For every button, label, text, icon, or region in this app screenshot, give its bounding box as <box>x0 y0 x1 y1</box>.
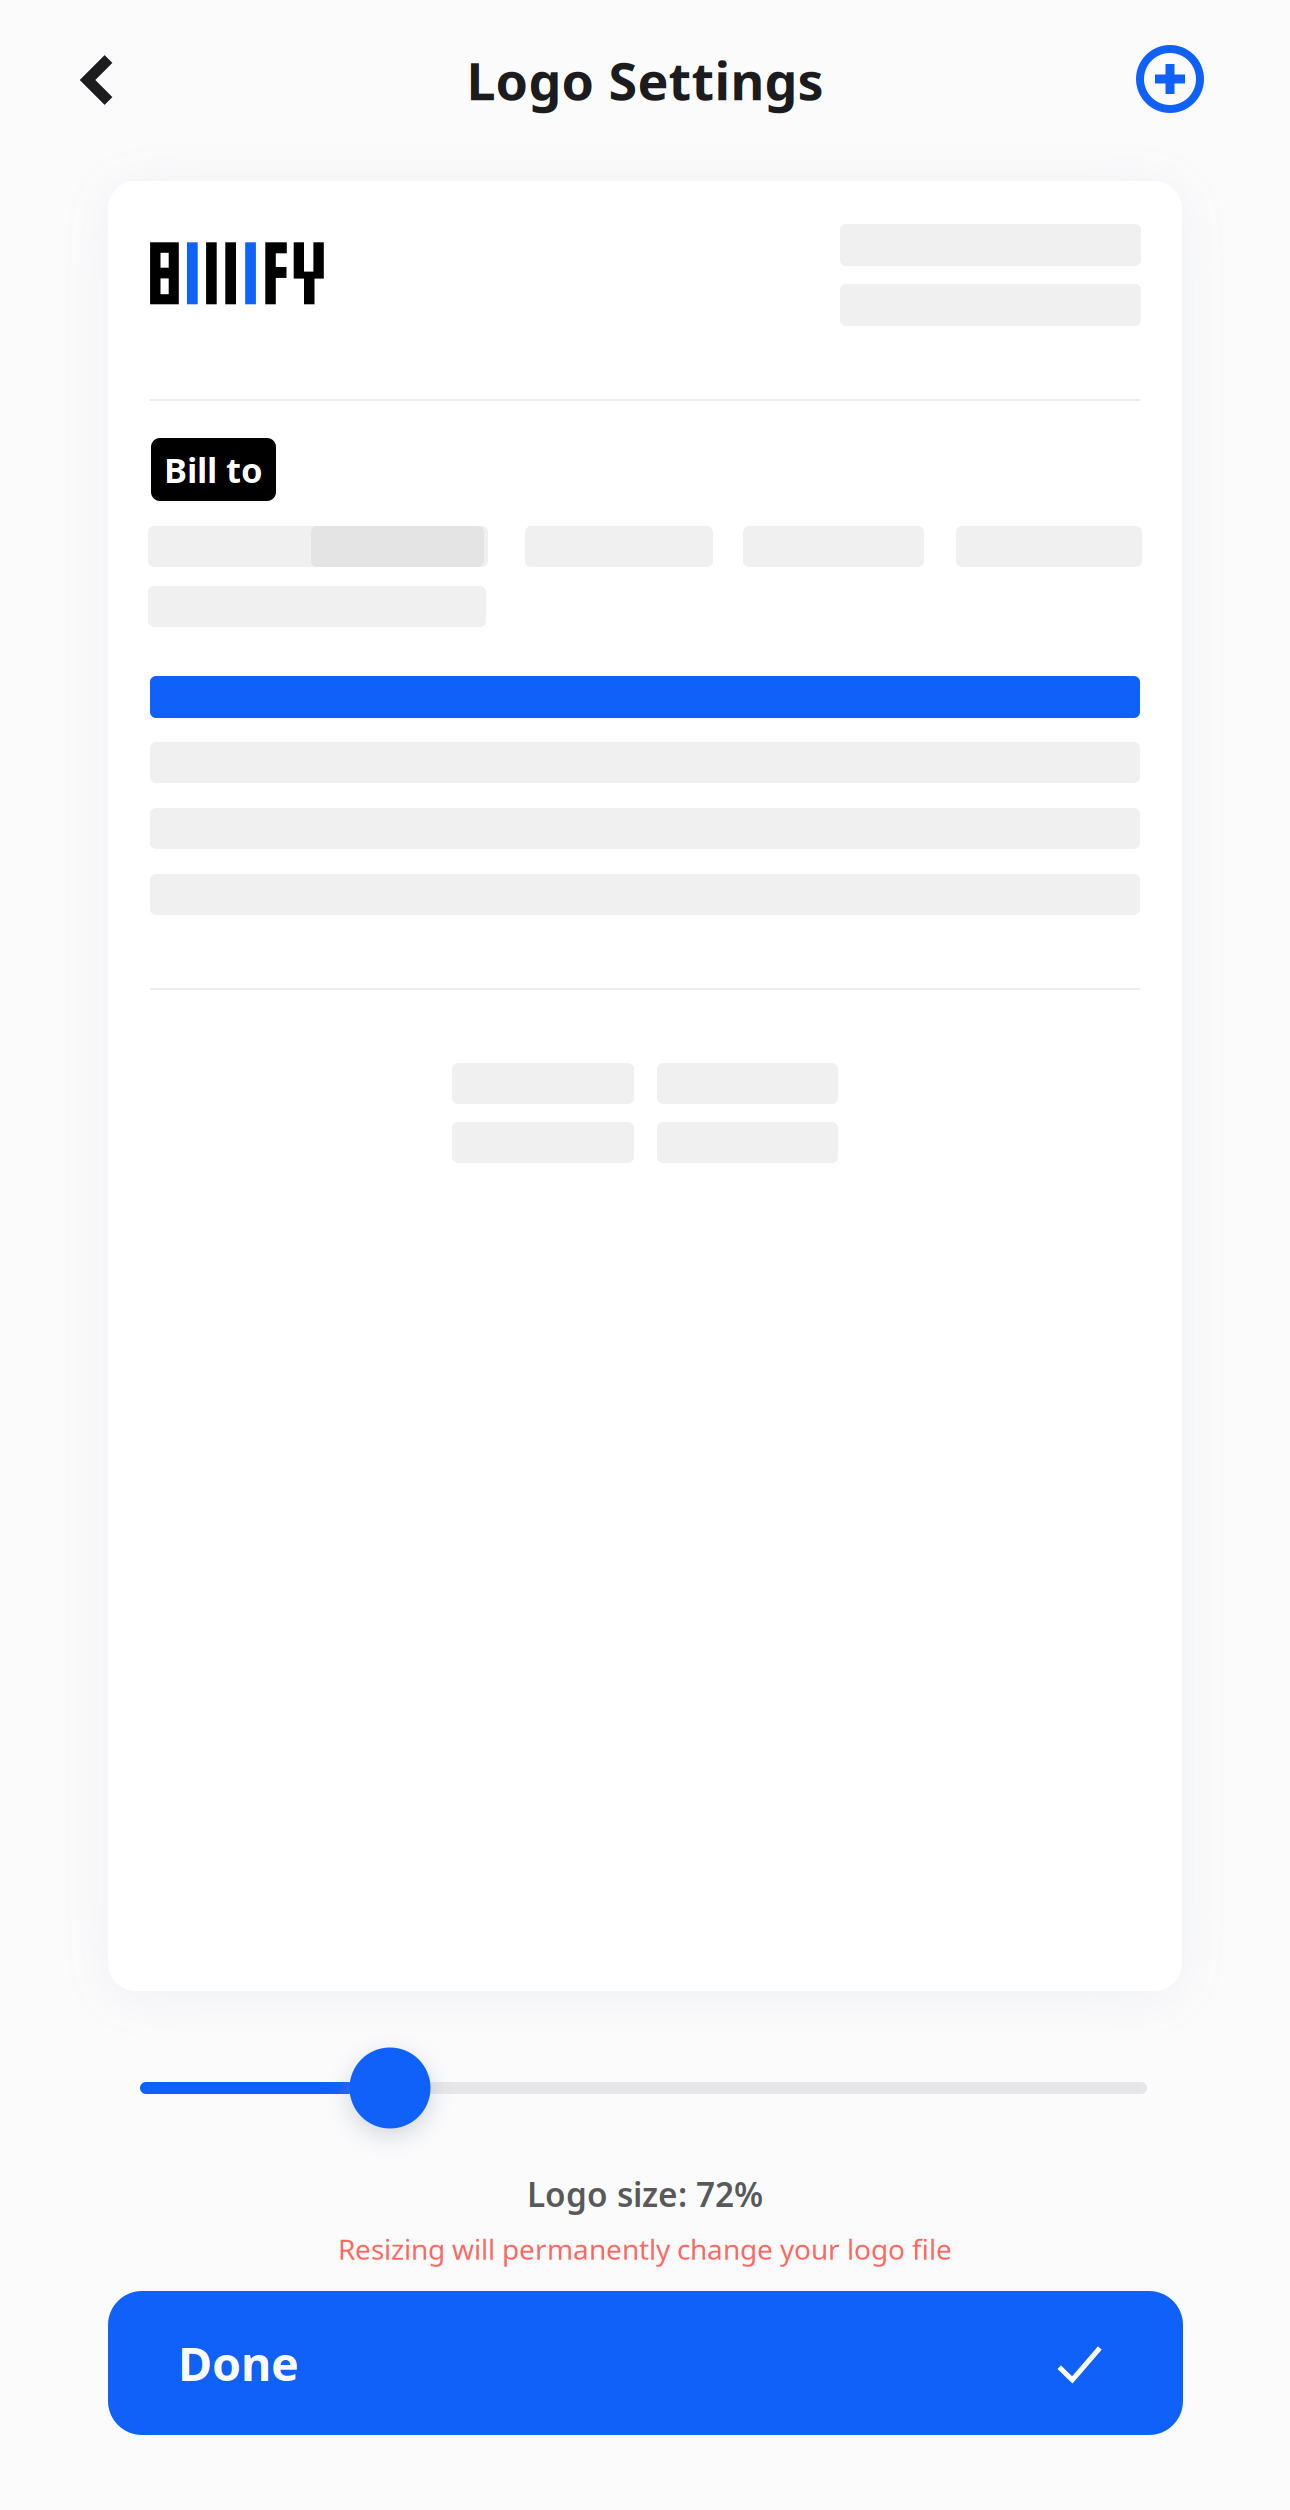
button[interactable]: Done <box>108 2291 1183 2435</box>
staticText: Resizing will permanently change your lo… <box>338 2230 952 2268</box>
button[interactable]: Logo size <box>135 2033 1185 2143</box>
button[interactable]: Add <box>1118 27 1222 131</box>
staticText: Logo size: 72% <box>527 2172 763 2216</box>
staticText: Logo Settings <box>466 45 823 115</box>
staticText: Done <box>178 2332 299 2394</box>
button[interactable]: Back <box>43 25 153 135</box>
staticText: Bill to <box>164 446 263 492</box>
